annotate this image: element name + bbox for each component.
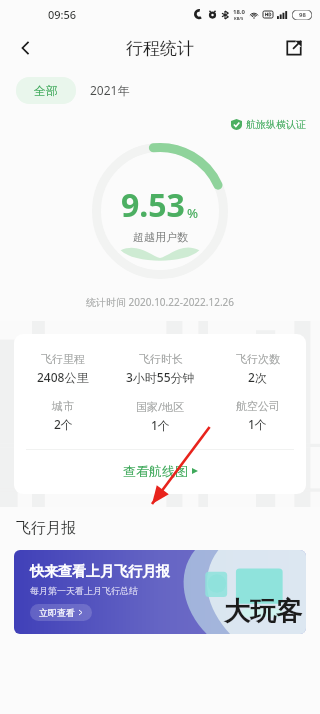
staticText: 统计时间 2020.10.22-2022.12.26 (0, 295, 320, 309)
staticText: 全部 (34, 83, 58, 98)
staticText: % (187, 204, 199, 222)
staticText: 飞行里程 (41, 352, 85, 366)
staticText: 2408公里 (37, 369, 89, 385)
staticText: 2021年 (90, 82, 130, 98)
staticText: 超越用户数 (133, 230, 188, 244)
button[interactable]: 飞行里程 (14, 334, 306, 494)
staticText: 行程统计 (126, 38, 194, 59)
staticText: 1个 (151, 417, 170, 433)
staticText: 飞行次数 (236, 352, 280, 366)
staticText: 飞行月报 (16, 519, 76, 538)
staticText: 航旅纵横认证 (246, 118, 306, 131)
button[interactable]: 2021年 (76, 76, 144, 104)
staticText: 国家/地区 (136, 399, 185, 414)
staticText: 18.0 (233, 8, 245, 16)
staticText: 2次 (248, 369, 267, 385)
button[interactable]: 航旅纵横认证 (231, 118, 306, 131)
staticText: 快来查看上月飞行月报 (30, 563, 170, 581)
staticText: 09:56 (48, 7, 77, 22)
button[interactable]: 立即查看 (30, 604, 92, 621)
staticText: 每月第一天看上月飞行总结 (30, 585, 138, 596)
button[interactable]: Back (8, 30, 44, 66)
staticText: 飞行时长 (139, 352, 183, 366)
staticText: 城市 (52, 399, 74, 413)
staticText: 大玩客 (224, 595, 302, 628)
staticText: 查看航线图 (123, 463, 188, 479)
staticText: 3小时55分钟 (126, 369, 195, 385)
staticText: 98 (299, 11, 306, 19)
button[interactable]: 全部 (16, 77, 76, 104)
staticText: 1个 (248, 416, 267, 432)
staticText: 2个 (54, 416, 73, 432)
staticText: 立即查看 (39, 607, 75, 618)
staticText: 航空公司 (236, 399, 280, 413)
button[interactable]: Share (276, 30, 312, 66)
staticText: 9.53 (121, 183, 185, 227)
staticText: KB/S (234, 16, 244, 21)
button[interactable]: 查看航线图 (14, 450, 306, 492)
button[interactable]: 快来查看上月飞行月报 (14, 550, 306, 634)
